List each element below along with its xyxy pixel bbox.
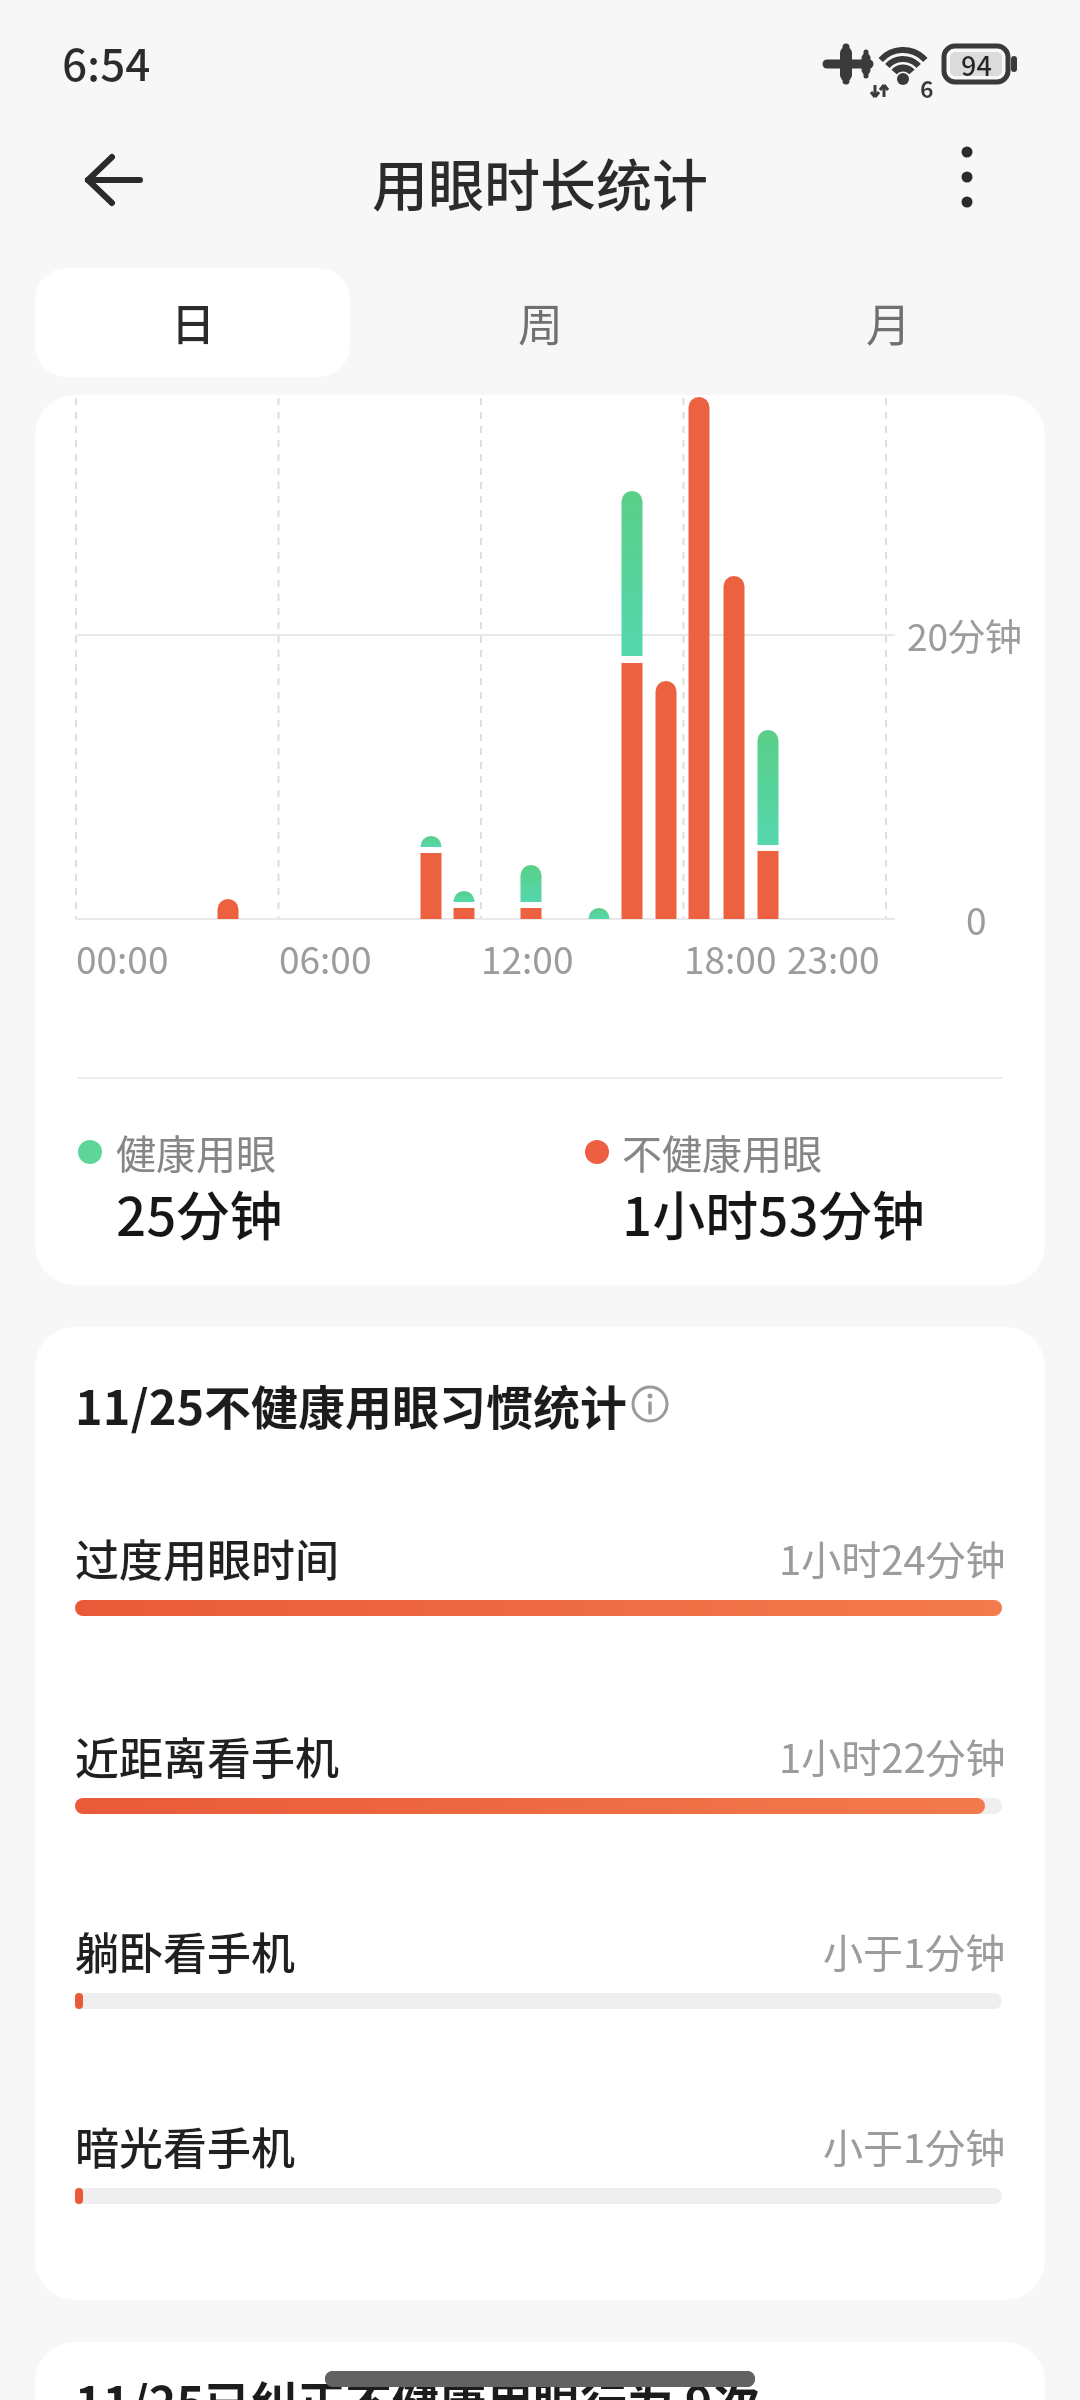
staticText: 1小时24分钟 [779,1529,1006,1587]
staticText: 00:00 [76,931,169,985]
staticText: 日 [171,290,215,354]
staticText: 11/25已纠正不健康用眼行为 9次 [75,2366,760,2400]
staticText: 23:00 [787,931,880,985]
staticText: 25分钟 [116,1175,283,1252]
staticText: 12:00 [481,931,574,985]
staticText: 11/25不健康用眼习惯统计 [75,1370,628,1438]
staticText: 1小时53分钟 [622,1175,925,1252]
staticText: 20分钟 [907,608,1023,662]
staticText: 小于1分钟 [823,1922,1006,1980]
staticText: 小于1分钟 [823,2117,1006,2175]
staticText: 0 [966,892,987,946]
staticText: 用眼时长统计 [372,141,708,222]
staticText: 6 [920,71,934,104]
staticText: 近距离看手机 [75,1724,339,1788]
staticText: 健康用眼 [116,1123,276,1181]
staticText: 不健康用眼 [622,1123,822,1181]
staticText: 94 [961,45,992,84]
staticText: 18:00 [684,931,777,985]
staticText: 暗光看手机 [75,2114,295,2178]
staticText: 6:54 [62,30,151,94]
staticText: 1小时22分钟 [779,1727,1006,1785]
staticText: 月 [866,290,912,355]
staticText: 06:00 [279,931,372,985]
staticText: 周 [518,290,564,355]
staticText: 躺卧看手机 [75,1919,295,1983]
staticText: 过度用眼时间 [75,1526,339,1590]
